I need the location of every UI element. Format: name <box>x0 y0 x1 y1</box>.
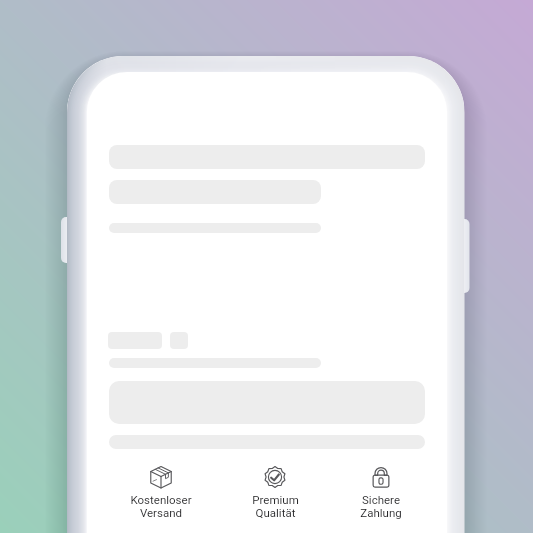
button[interactable]: Secure payment <box>331 466 431 519</box>
button[interactable]: Free shipping <box>111 466 211 519</box>
staticText: Premium Qualität <box>252 493 299 519</box>
staticText: Kostenloser Versand <box>130 493 192 519</box>
staticText: Sichere Zahlung <box>360 493 402 519</box>
button[interactable]: Premium quality <box>225 466 325 519</box>
